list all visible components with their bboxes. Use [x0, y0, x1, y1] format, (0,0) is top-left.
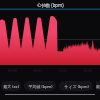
- staticText: 心拍数 (bpm): [37, 2, 64, 8]
- button[interactable]: 最大 (xx): [1, 81, 21, 91]
- staticText: 00:00: [8, 68, 18, 73]
- button[interactable]: 平均値 (bpm): [24, 81, 56, 91]
- staticText: 平均値 (bpm): [28, 84, 53, 89]
- staticText: 18:00: [83, 68, 93, 73]
- button[interactable]: 最小: [96, 81, 100, 91]
- staticText: 12:00: [58, 68, 68, 73]
- button[interactable]: サイズ (bpm): [59, 81, 93, 91]
- staticText: サイズ (bpm): [64, 84, 89, 89]
- staticText: 最小: [96, 84, 100, 89]
- staticText: 06:00: [33, 68, 43, 73]
- staticText: 最大 (xx): [3, 84, 19, 89]
